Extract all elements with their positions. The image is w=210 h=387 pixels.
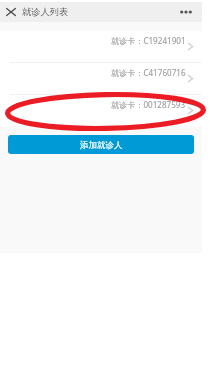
staticText: 就诊人列表	[22, 6, 68, 18]
staticText: 添加就诊人	[80, 140, 123, 151]
button[interactable]: 就诊卡：C19241901	[0, 31, 202, 62]
staticText: 就诊卡：C41760716	[111, 67, 186, 78]
button[interactable]: 就诊卡：001287593	[0, 95, 202, 126]
staticText: 就诊卡：C19241901	[111, 35, 186, 46]
button[interactable]: More options	[179, 5, 193, 19]
staticText: 就诊卡：001287593	[111, 99, 186, 110]
button[interactable]: Close	[3, 4, 19, 20]
button[interactable]: 添加就诊人	[8, 135, 194, 154]
button[interactable]: 就诊卡：C41760716	[0, 63, 202, 94]
